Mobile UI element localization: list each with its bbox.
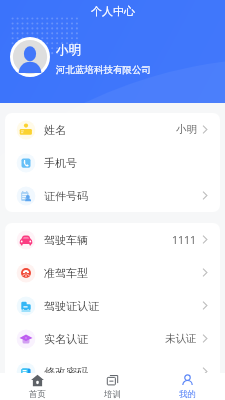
staticText: 个人中心	[91, 4, 135, 18]
button[interactable]: 证件号码	[5, 179, 220, 212]
staticText: 驾驶车辆	[44, 233, 88, 247]
button[interactable]: 培训	[75, 373, 150, 400]
staticText: 未认证	[165, 332, 197, 345]
staticText: 河北蓝培科技有限公司	[56, 64, 151, 76]
button[interactable]: 准驾车型	[5, 256, 220, 289]
staticText: 准驾车型	[44, 266, 88, 280]
button[interactable]: 我的	[150, 373, 225, 400]
staticText: 我的	[179, 389, 196, 400]
button[interactable]: 修改密码	[5, 355, 220, 388]
staticText: 小明	[56, 42, 81, 58]
staticText: 首页	[29, 389, 46, 400]
button[interactable]: 驾驶车辆	[5, 223, 220, 256]
staticText: 培训	[104, 389, 121, 400]
button[interactable]: 姓名	[5, 113, 220, 146]
staticText: 修改密码	[44, 365, 88, 379]
staticText: 驾驶证认证	[44, 299, 99, 313]
button[interactable]: 手机号	[5, 146, 220, 179]
button[interactable]: 驾驶证认证	[5, 289, 220, 322]
staticText: 证件号码	[44, 189, 88, 203]
staticText: 手机号	[44, 156, 77, 170]
staticText: 小明	[176, 123, 197, 136]
button[interactable]: 首页	[0, 373, 75, 400]
staticText: 姓名	[44, 123, 66, 137]
button[interactable]: 实名认证	[5, 322, 220, 355]
staticText: 1111	[172, 233, 197, 247]
staticText: 实名认证	[44, 332, 88, 346]
